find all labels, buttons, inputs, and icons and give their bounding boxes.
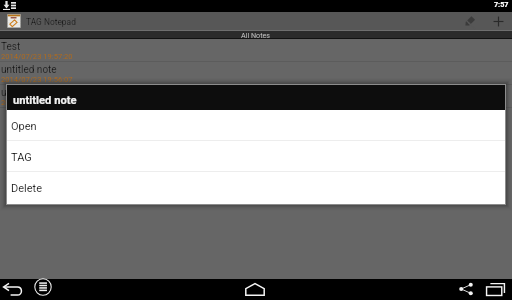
staticText: All Notes [241,31,271,39]
button[interactable]: Test [0,39,512,62]
button[interactable]: Add note [484,12,512,30]
staticText: 2014/07/23 19:55:41 [1,98,73,107]
button[interactable]: TAG [7,141,505,172]
staticText: 2014/07/23 19:56:07 [1,75,73,84]
staticText: untitled note [1,64,57,76]
button[interactable]: Home [240,279,270,300]
button[interactable]: Share [454,279,478,299]
staticText: TAG [11,151,32,164]
button[interactable]: Tag [456,12,484,30]
staticText: Delete [11,182,42,195]
button[interactable]: Delete [7,172,505,203]
staticText: untitled note [13,94,77,107]
staticText: 2014/07/23 19:57:20 [1,52,73,61]
button[interactable]: TAG Notepad [0,12,83,30]
staticText: untitled note [1,87,57,99]
button[interactable]: untitled note [0,85,512,108]
button[interactable]: Recent apps [481,279,510,300]
button[interactable]: untitled note [0,62,512,85]
button[interactable]: Keyboard layout [29,276,57,297]
button[interactable]: Open [7,110,505,141]
staticText: Test [1,41,21,53]
staticText: Open [11,120,37,133]
button[interactable]: Back [0,279,28,300]
staticText: 7:57 [494,0,509,8]
staticText: TAG Notepad [26,17,76,27]
